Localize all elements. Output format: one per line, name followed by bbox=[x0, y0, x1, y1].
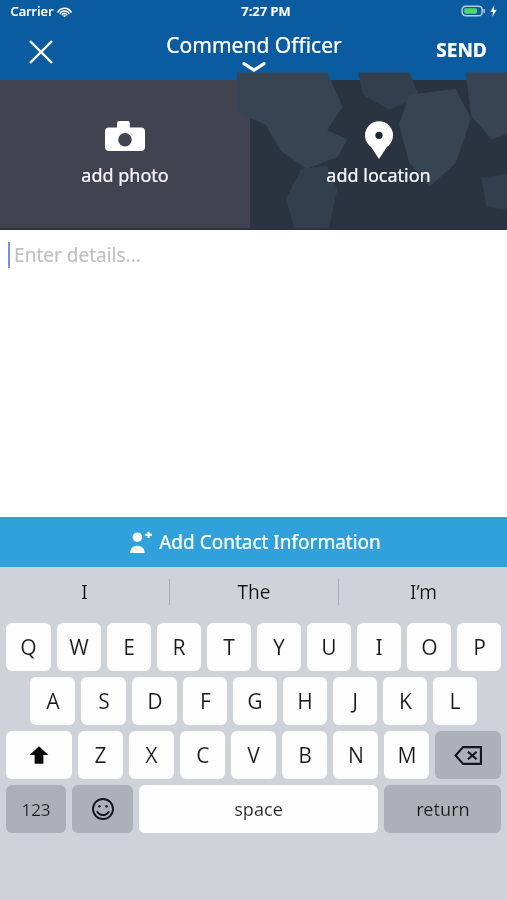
staticText: D bbox=[147, 687, 163, 716]
staticText: I bbox=[375, 633, 383, 662]
button[interactable]: C bbox=[180, 731, 225, 779]
button[interactable]: Enter details... bbox=[0, 230, 507, 280]
staticText: 123 bbox=[21, 798, 51, 821]
staticText: V bbox=[247, 741, 260, 770]
staticText: R bbox=[172, 633, 186, 662]
button[interactable]: Shift bbox=[6, 731, 72, 779]
staticText: add photo bbox=[81, 163, 169, 188]
staticText: G bbox=[247, 687, 263, 716]
staticText: E bbox=[123, 633, 135, 662]
button[interactable]: space bbox=[139, 785, 378, 833]
button[interactable]: Emoji bbox=[72, 785, 133, 833]
staticText: W bbox=[69, 633, 89, 662]
staticText: I’m bbox=[410, 579, 437, 605]
button[interactable]: I bbox=[0, 567, 169, 617]
staticText: C bbox=[196, 741, 210, 770]
button[interactable]: V bbox=[231, 731, 276, 779]
button[interactable]: Z bbox=[78, 731, 123, 779]
button[interactable]: R bbox=[157, 623, 201, 671]
button[interactable]: W bbox=[57, 623, 101, 671]
button[interactable]: Backspace bbox=[435, 731, 501, 779]
button[interactable]: Y bbox=[257, 623, 301, 671]
staticText: O bbox=[421, 633, 438, 662]
button[interactable]: S bbox=[81, 677, 126, 725]
staticText: K bbox=[399, 687, 412, 716]
button[interactable]: B bbox=[282, 731, 327, 779]
button[interactable]: D bbox=[132, 677, 177, 725]
staticText: J bbox=[352, 687, 358, 716]
button[interactable]: E bbox=[107, 623, 151, 671]
button[interactable]: I’m bbox=[339, 567, 507, 617]
button[interactable]: T bbox=[207, 623, 251, 671]
staticText: Y bbox=[273, 633, 285, 662]
staticText: X bbox=[145, 741, 158, 770]
staticText: U bbox=[321, 633, 337, 662]
button[interactable]: SEND bbox=[436, 30, 487, 70]
button[interactable]: Commend Officer bbox=[166, 31, 342, 71]
button[interactable]: X bbox=[129, 731, 174, 779]
staticText: The bbox=[237, 579, 271, 605]
staticText: M bbox=[397, 741, 417, 770]
button[interactable]: M bbox=[384, 731, 429, 779]
button[interactable]: H bbox=[283, 677, 327, 725]
staticText: T bbox=[223, 633, 235, 662]
staticText: add location bbox=[326, 163, 431, 188]
staticText: N bbox=[348, 741, 364, 770]
button[interactable]: return bbox=[384, 785, 501, 833]
staticText: Commend Officer bbox=[166, 31, 342, 60]
button[interactable]: K bbox=[383, 677, 427, 725]
staticText: Carrier bbox=[10, 2, 54, 20]
staticText: S bbox=[98, 687, 110, 716]
button[interactable]: Q bbox=[6, 623, 51, 671]
button[interactable]: add photo bbox=[0, 80, 250, 228]
button[interactable]: G bbox=[233, 677, 277, 725]
staticText: Z bbox=[94, 741, 107, 770]
button[interactable]: J bbox=[333, 677, 377, 725]
button[interactable]: F bbox=[183, 677, 227, 725]
staticText: return bbox=[416, 797, 470, 822]
button[interactable]: U bbox=[307, 623, 351, 671]
staticText: Enter details... bbox=[14, 242, 141, 268]
staticText: Add Contact Information bbox=[159, 529, 381, 555]
button[interactable]: O bbox=[407, 623, 451, 671]
staticText: P bbox=[473, 633, 486, 662]
staticText: SEND bbox=[436, 37, 487, 63]
staticText: Q bbox=[20, 633, 37, 662]
button[interactable]: L bbox=[433, 677, 477, 725]
staticText: 7:27 PM bbox=[241, 2, 291, 20]
button[interactable]: 123 bbox=[6, 785, 66, 833]
button[interactable]: Add Contact Information bbox=[0, 517, 507, 567]
button[interactable]: The bbox=[170, 567, 338, 617]
staticText: A bbox=[46, 687, 60, 716]
staticText: F bbox=[200, 687, 211, 716]
staticText: L bbox=[449, 687, 461, 716]
button[interactable]: Close bbox=[19, 30, 63, 74]
staticText: H bbox=[297, 687, 313, 716]
staticText: space bbox=[234, 797, 283, 822]
button[interactable]: P bbox=[457, 623, 501, 671]
button[interactable]: A bbox=[30, 677, 75, 725]
staticText: B bbox=[298, 741, 312, 770]
staticText: I bbox=[81, 579, 88, 605]
button[interactable]: I bbox=[357, 623, 401, 671]
button[interactable]: add location bbox=[250, 80, 507, 228]
button[interactable]: N bbox=[333, 731, 378, 779]
